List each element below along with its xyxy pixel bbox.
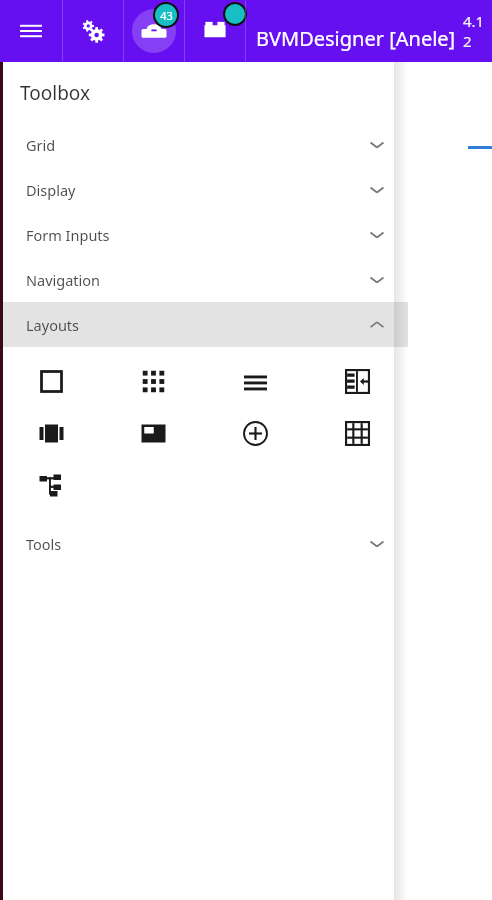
button[interactable]: Tree (29, 463, 73, 507)
button[interactable]: Table (335, 411, 379, 455)
button[interactable]: Container (29, 359, 73, 403)
staticText: BVMDesigner [Anele] (256, 25, 456, 52)
button[interactable]: Carousel (29, 411, 73, 455)
button[interactable]: Split panel (335, 359, 379, 403)
staticText: 43 (160, 8, 173, 23)
staticText: Navigation (26, 270, 101, 290)
button[interactable]: Toolbox (124, 0, 184, 62)
button[interactable]: Layouts (0, 302, 408, 347)
staticText: Toolbox (20, 80, 90, 106)
staticText: Tools (26, 534, 62, 554)
button[interactable]: Tools (0, 521, 408, 566)
button[interactable]: List (233, 359, 277, 403)
staticText: Grid (26, 135, 56, 155)
staticText: Layouts (26, 315, 80, 335)
button[interactable]: Widgets (185, 0, 245, 62)
button[interactable]: Menu (0, 0, 62, 62)
button[interactable]: Picture in picture (131, 411, 175, 455)
staticText: Display (26, 180, 76, 200)
button[interactable]: Grid (0, 122, 408, 167)
button[interactable]: Display (0, 167, 408, 212)
staticText: 4.12 (463, 11, 492, 51)
button[interactable]: Navigation (0, 257, 408, 302)
button[interactable]: Grid of items (131, 359, 175, 403)
staticText: Form Inputs (26, 225, 110, 245)
button[interactable]: Add (233, 411, 277, 455)
button[interactable]: Settings (63, 0, 123, 62)
button[interactable]: Form Inputs (0, 212, 408, 257)
